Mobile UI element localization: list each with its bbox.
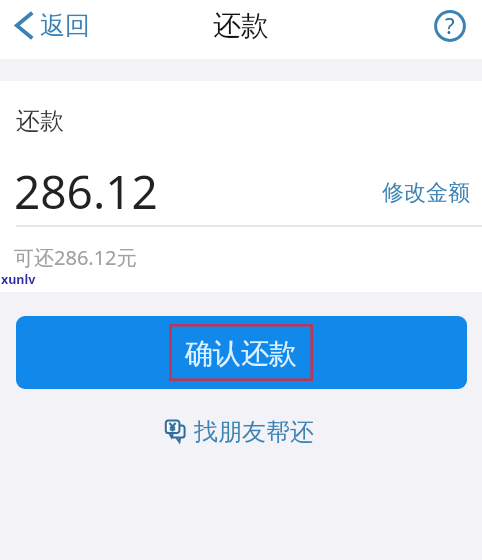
- staticText: 还款: [213, 8, 269, 43]
- staticText: 找朋友帮还: [194, 417, 314, 447]
- staticText: 286.12: [14, 160, 158, 223]
- button[interactable]: 修改金额: [382, 179, 470, 207]
- staticText: 确认还款: [185, 336, 297, 371]
- staticText: 还款: [16, 106, 64, 136]
- button[interactable]: 确认还款: [16, 316, 467, 389]
- button[interactable]: Help: [434, 10, 466, 42]
- staticText: xunlv: [1, 271, 36, 288]
- staticText: 返回: [40, 10, 90, 41]
- staticText: 可还286.12元: [14, 244, 137, 271]
- staticText: ?: [445, 10, 455, 40]
- button[interactable]: 返回: [15, 10, 90, 41]
- button[interactable]: 找朋友帮还: [163, 414, 320, 444]
